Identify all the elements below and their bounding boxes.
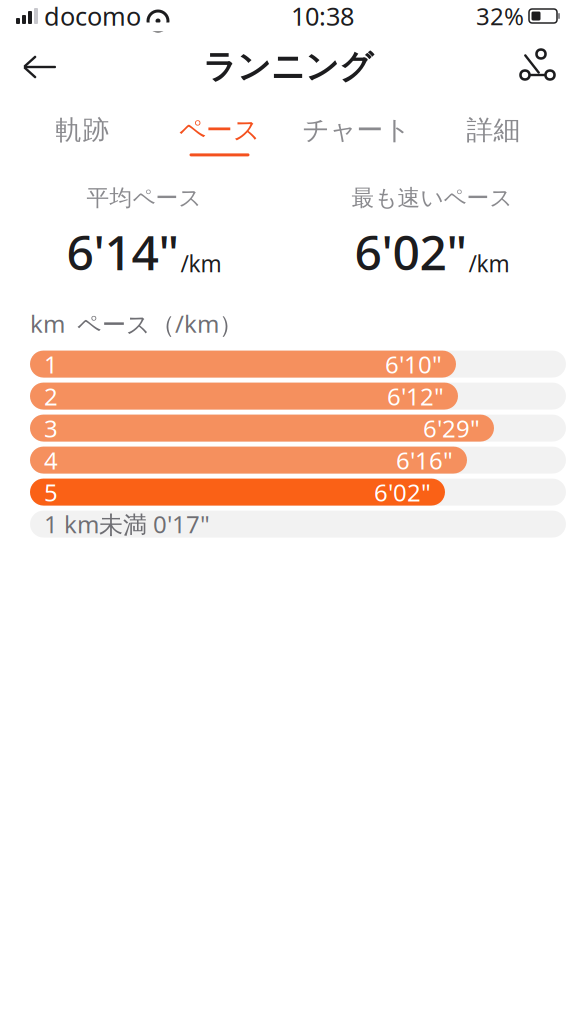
staticText: /km <box>468 248 509 279</box>
staticText: 1 <box>44 348 58 380</box>
staticText: /km <box>180 248 221 279</box>
staticText: 32% <box>476 0 524 32</box>
staticText: docomo <box>44 0 141 33</box>
staticText: 10:38 <box>291 0 354 33</box>
staticText: 1 km未満 0'17" <box>44 508 210 540</box>
staticText: 6'12" <box>387 380 444 412</box>
staticText: 軌跡 <box>55 114 109 146</box>
staticText: 6'02" <box>374 476 431 508</box>
staticText: 6'10" <box>385 348 442 380</box>
button[interactable]: 共有 <box>508 39 564 95</box>
staticText: 平均ペース <box>86 184 201 212</box>
staticText: 6'29" <box>423 412 480 444</box>
staticText: チャート <box>302 114 410 146</box>
staticText: 3 <box>44 412 58 444</box>
staticText: ランニング <box>203 46 373 87</box>
staticText: 6'16" <box>396 444 453 476</box>
staticText: ペース <box>179 114 260 146</box>
button[interactable]: チャート <box>288 105 425 165</box>
staticText: 最も速いペース <box>351 184 512 212</box>
staticText: 5 <box>44 476 58 508</box>
button[interactable]: ペース <box>151 105 288 165</box>
staticText: 詳細 <box>466 114 520 146</box>
staticText: 6'14" <box>66 220 179 283</box>
staticText: 2 <box>44 380 58 412</box>
staticText: 6'02" <box>354 220 467 283</box>
staticText: km ペース（/km） <box>30 308 243 340</box>
button[interactable]: 軌跡 <box>14 105 151 165</box>
button[interactable]: 戻る <box>12 39 68 95</box>
button[interactable]: 詳細 <box>425 105 562 165</box>
staticText: 4 <box>44 444 58 476</box>
